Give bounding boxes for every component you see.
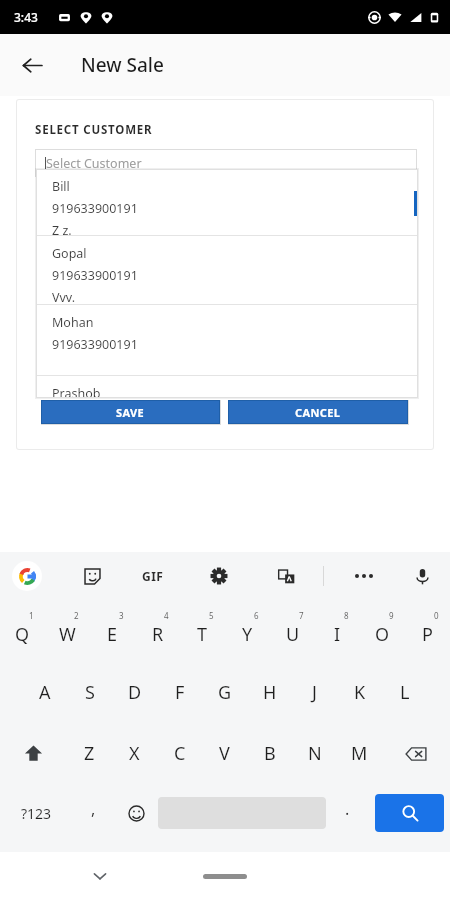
- button[interactable]: S: [67, 662, 112, 723]
- button[interactable]: 2: [45, 600, 90, 662]
- button[interactable]: 3: [90, 600, 135, 662]
- staticText: E: [107, 622, 118, 647]
- staticText: 919633900191: [52, 267, 138, 284]
- button[interactable]: 5: [180, 600, 225, 662]
- staticText: F: [175, 680, 185, 705]
- button[interactable]: C: [157, 723, 202, 784]
- button[interactable]: 1: [0, 600, 45, 662]
- button[interactable]: Google: [12, 561, 42, 591]
- staticText: R: [152, 622, 164, 647]
- staticText: V: [219, 741, 230, 766]
- button[interactable]: Voice input: [406, 560, 438, 592]
- staticText: ?123: [21, 804, 52, 823]
- button[interactable]: Translate: [270, 560, 302, 592]
- staticText: I: [334, 622, 341, 647]
- staticText: 9: [389, 610, 394, 621]
- staticText: 0: [434, 610, 439, 621]
- staticText: Z: [84, 741, 95, 766]
- button[interactable]: D: [112, 662, 157, 723]
- button[interactable]: B: [247, 723, 292, 784]
- button[interactable]: A: [22, 662, 67, 723]
- staticText: J: [312, 680, 317, 705]
- staticText: Z z.: [52, 222, 72, 235]
- button[interactable]: Gopal: [36, 236, 418, 304]
- staticText: M: [351, 741, 368, 766]
- button[interactable]: ,: [72, 784, 115, 842]
- button[interactable]: N: [292, 723, 337, 784]
- staticText: 3: [119, 610, 124, 621]
- staticText: B: [264, 741, 276, 766]
- staticText: D: [128, 680, 142, 705]
- staticText: CANCEL: [295, 405, 341, 420]
- button[interactable]: More: [348, 560, 380, 592]
- button[interactable]: F: [157, 662, 202, 723]
- button[interactable]: 8: [315, 600, 360, 662]
- staticText: Gopal: [52, 245, 87, 262]
- button[interactable]: Backspace: [382, 723, 450, 784]
- button[interactable]: 4: [135, 600, 180, 662]
- staticText: 919633900191: [52, 336, 138, 353]
- staticText: 8: [344, 610, 349, 621]
- staticText: L: [400, 680, 410, 705]
- staticText: W: [59, 622, 76, 647]
- button[interactable]: X: [112, 723, 157, 784]
- button[interactable]: Back: [10, 43, 54, 87]
- staticText: P: [422, 622, 433, 647]
- staticText: Prashob: [52, 385, 101, 398]
- button[interactable]: M: [337, 723, 382, 784]
- button[interactable]: Hide keyboard: [85, 861, 115, 891]
- button[interactable]: Settings: [203, 560, 235, 592]
- button[interactable]: Bill: [36, 169, 418, 235]
- staticText: T: [197, 622, 208, 647]
- staticText: O: [375, 622, 390, 647]
- staticText: Select Customer: [46, 155, 142, 172]
- button[interactable]: Stickers: [76, 560, 108, 592]
- staticText: 919633900191: [52, 200, 138, 217]
- staticText: New Sale: [81, 52, 164, 78]
- button[interactable]: J: [292, 662, 337, 723]
- staticText: SELECT CUSTOMER: [35, 122, 153, 138]
- button[interactable]: Emoji: [115, 784, 158, 842]
- staticText: ,: [91, 798, 96, 820]
- button[interactable]: Mohan: [36, 305, 418, 375]
- button[interactable]: 0: [405, 600, 450, 662]
- staticText: Bill: [52, 178, 70, 195]
- button[interactable]: 7: [270, 600, 315, 662]
- button[interactable]: Prashob: [36, 376, 418, 398]
- staticText: U: [286, 622, 300, 647]
- staticText: Vvv.: [52, 289, 76, 304]
- staticText: 3:43: [14, 9, 38, 25]
- button[interactable]: Z: [67, 723, 112, 784]
- button[interactable]: G: [202, 662, 247, 723]
- button[interactable]: ?123: [0, 784, 72, 842]
- staticText: 7: [299, 610, 304, 621]
- staticText: .: [345, 798, 350, 820]
- button[interactable]: K: [337, 662, 382, 723]
- button[interactable]: L: [382, 662, 427, 723]
- button[interactable]: 9: [360, 600, 405, 662]
- button[interactable]: Search: [375, 794, 444, 832]
- button[interactable]: GIF: [134, 560, 172, 592]
- staticText: GIF: [142, 568, 164, 584]
- staticText: K: [354, 680, 366, 705]
- button[interactable]: V: [202, 723, 247, 784]
- button[interactable]: SAVE: [41, 400, 220, 424]
- staticText: H: [263, 680, 277, 705]
- staticText: X: [129, 741, 140, 766]
- staticText: 4: [164, 610, 169, 621]
- button[interactable]: H: [247, 662, 292, 723]
- staticText: Q: [15, 622, 30, 647]
- staticText: C: [174, 741, 186, 766]
- button[interactable]: .: [326, 784, 369, 842]
- button[interactable]: 6: [225, 600, 270, 662]
- button[interactable]: CANCEL: [228, 400, 408, 424]
- staticText: Y: [242, 622, 253, 647]
- staticText: SAVE: [116, 405, 145, 420]
- button[interactable]: Shift: [0, 723, 67, 784]
- staticText: Mohan: [52, 314, 94, 331]
- button[interactable]: Select Customer: [35, 149, 417, 177]
- staticText: S: [85, 680, 95, 705]
- staticText: 1: [29, 610, 34, 621]
- staticText: 2: [74, 610, 79, 621]
